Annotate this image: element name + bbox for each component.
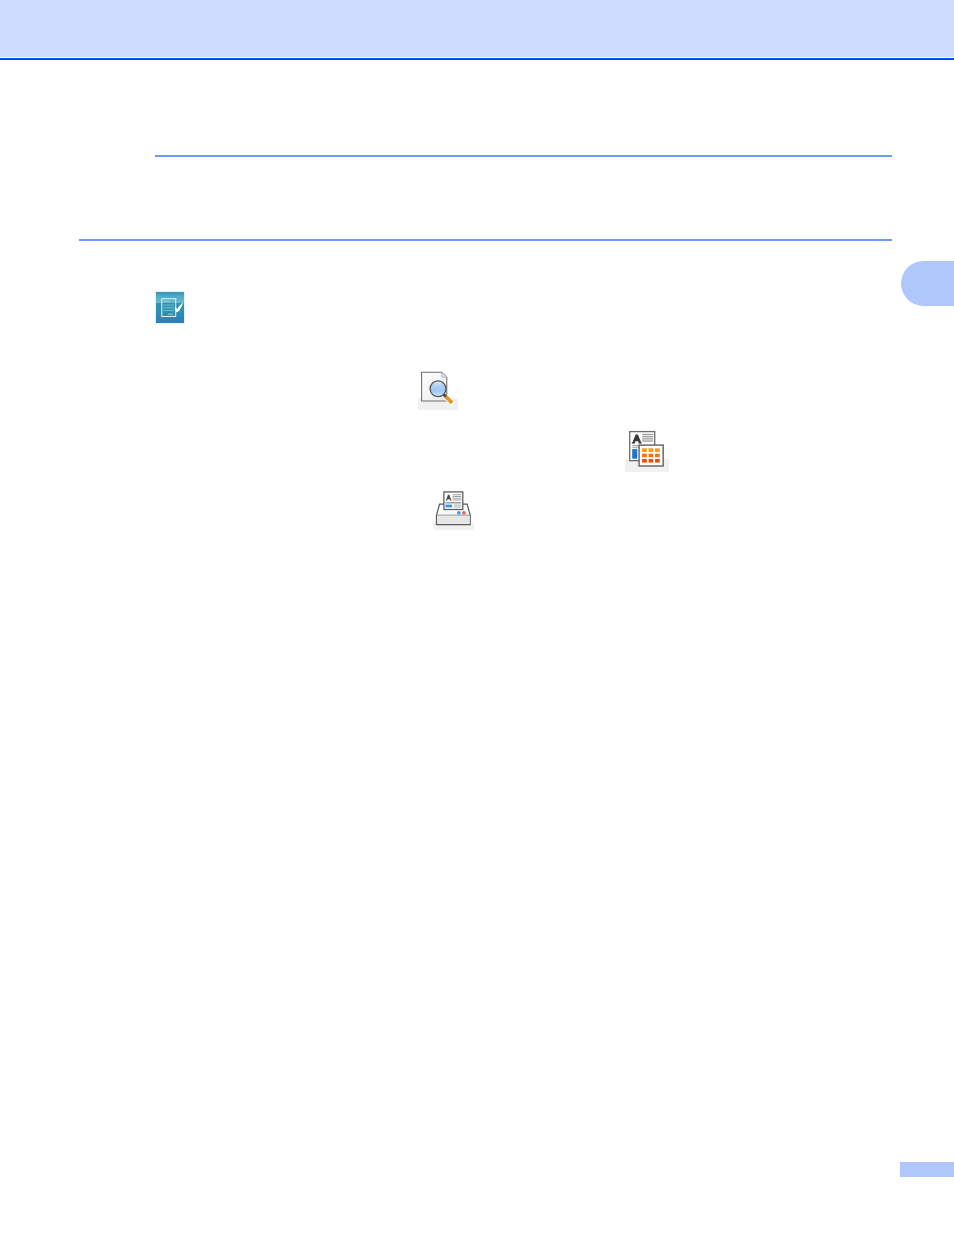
button[interactable]: Chapter tab [901, 261, 954, 306]
button[interactable]: Scanner [433, 490, 474, 530]
button[interactable]: Preview scan [418, 370, 458, 410]
button[interactable]: Scan to file [155, 291, 185, 324]
button[interactable]: Document layout settings [625, 430, 669, 472]
